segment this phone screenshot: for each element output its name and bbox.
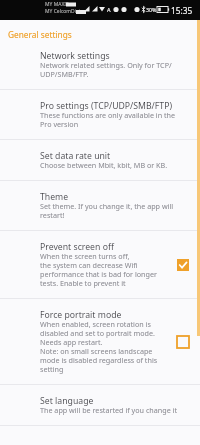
button[interactable]: Force portrait mode [0, 299, 200, 384]
button[interactable]: Checked checkbox [177, 259, 189, 271]
staticText: Choose between Mbit, kbit, MB or KB. [40, 161, 168, 170]
button[interactable]: Unchecked checkbox [177, 336, 189, 348]
staticText: Network settings [40, 51, 110, 61]
button[interactable]: Prevent screen off [0, 231, 200, 298]
button[interactable]: Pro settings (TCP/UDP/SMB/FTP) [0, 90, 200, 139]
staticText: When enabled, screen rotation is disable… [40, 320, 158, 374]
staticText: Set theme. If you change it, the app wil… [40, 202, 174, 220]
staticText: General settings [8, 31, 72, 40]
staticText: MY CelcomDigi [45, 8, 81, 15]
staticText: Prevent screen off [40, 242, 114, 252]
staticText: When the screen turns off, the system ca… [40, 252, 157, 288]
staticText: Set data rate unit [40, 151, 111, 161]
staticText: A [107, 6, 111, 13]
button[interactable]: Set language [0, 385, 200, 425]
staticText: Force portrait mode [40, 310, 122, 320]
staticText: Set language [40, 396, 94, 406]
staticText: MY MAXIS [45, 1, 69, 8]
button[interactable]: Network settings [0, 40, 200, 89]
staticText: The app will be restarted if you change … [40, 406, 178, 415]
staticText: Network related settings. Only for TCP/ … [40, 61, 172, 79]
staticText: These functions are only available in th… [40, 111, 176, 129]
staticText: 15:35 [171, 5, 193, 16]
staticText: Theme [40, 192, 69, 202]
button[interactable]: Set data rate unit [0, 140, 200, 180]
staticText: Pro settings (TCP/UDP/SMB/FTP) [40, 101, 173, 111]
staticText: 30% [146, 6, 157, 13]
button[interactable]: Theme [0, 181, 200, 230]
